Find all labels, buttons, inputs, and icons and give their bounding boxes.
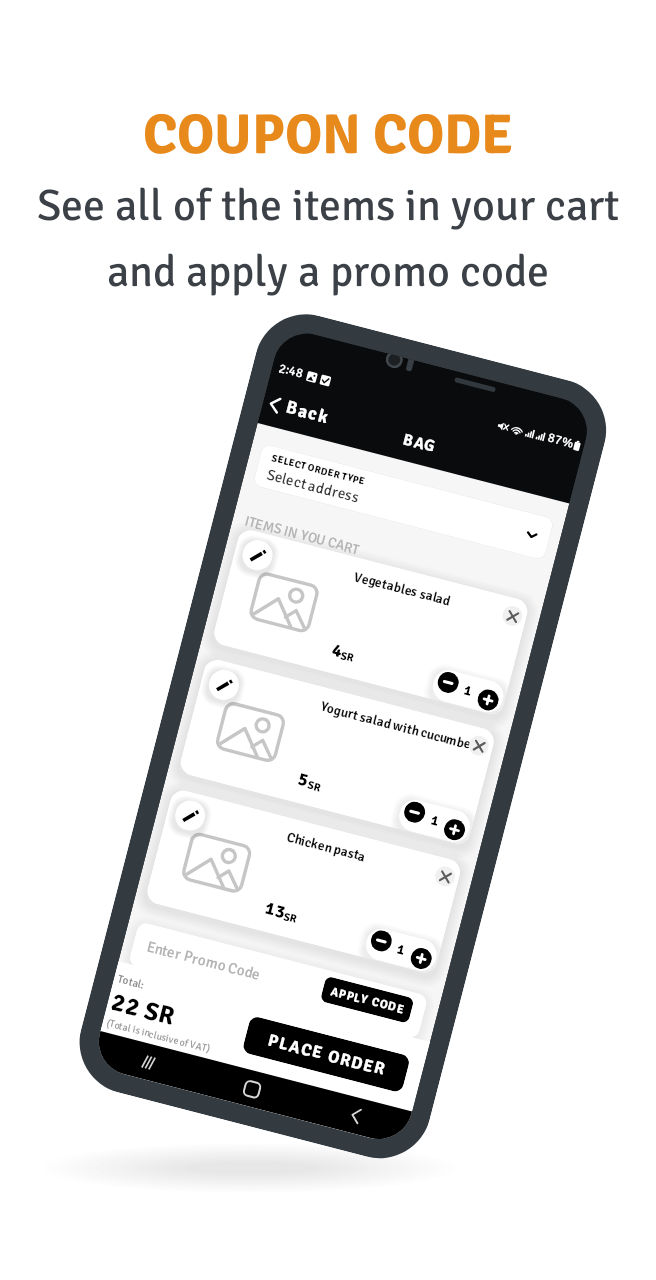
other: Back [284, 396, 331, 429]
other: Select address [265, 465, 361, 507]
other: APPLY CODE [329, 984, 406, 1017]
other: See all of the items in your cart [37, 179, 619, 234]
button[interactable]: Edit Yogurt salad with cucumber [206, 667, 242, 703]
other: SELECT ORDER TYPE [270, 452, 366, 488]
button[interactable]: Back [299, 1085, 412, 1146]
button[interactable]: Remove Chicken pasta [433, 864, 457, 889]
button[interactable]: Edit Vegetables salad [239, 537, 276, 573]
button[interactable]: Increase quantity [408, 946, 434, 971]
button[interactable]: APPLY CODE [320, 976, 414, 1024]
button[interactable]: Increase quantity [442, 817, 467, 842]
button[interactable]: Decrease quantity [435, 670, 461, 695]
other: Vegetables salad [352, 568, 452, 609]
button[interactable]: SELECT ORDER TYPE [252, 443, 555, 561]
button[interactable]: Decrease quantity [402, 799, 427, 825]
other: ITEMS IN YOU CART [242, 512, 361, 559]
button[interactable]: Back [264, 389, 334, 432]
other: (Total is inclusive of VAT) [105, 1016, 211, 1056]
button[interactable]: Edit Chicken pasta [172, 797, 208, 834]
other: 1 [395, 940, 407, 959]
other: and apply a promo code [107, 245, 549, 300]
button[interactable]: Home [196, 1058, 308, 1120]
other: COUPON CODE [143, 100, 513, 169]
other: SR [339, 648, 355, 665]
other: 4 [329, 638, 345, 663]
button[interactable]: Chicken pasta [144, 788, 463, 976]
other: Yogurt salad with cucumber [318, 698, 478, 755]
button[interactable]: Yogurt salad with cucumber [178, 657, 497, 847]
other: 22 SR [108, 986, 177, 1032]
button[interactable]: Remove Vegetables salad [500, 604, 525, 628]
other: BAG [401, 429, 437, 457]
other: 1 [428, 811, 441, 831]
other: Total: [116, 972, 146, 992]
other: SR [306, 778, 322, 795]
button[interactable]: Remove Yogurt salad with cucumber [467, 733, 491, 758]
other: Chicken pasta [285, 829, 367, 865]
other: 87% [546, 429, 575, 452]
other: 1 [462, 681, 474, 701]
button[interactable]: Decrease quantity [369, 928, 394, 954]
button[interactable]: Increase quantity [475, 687, 501, 713]
other: 2:48 [277, 360, 304, 382]
other: 5 [296, 768, 311, 793]
button[interactable]: Vegetables salad [211, 527, 530, 717]
other: Enter Promo Code [145, 937, 263, 985]
other: 13 [263, 897, 288, 924]
button[interactable]: Enter Promo Code [128, 921, 428, 1040]
other: PLACE ORDER [266, 1030, 386, 1080]
button[interactable]: Recent apps [91, 1031, 205, 1093]
other: SR [282, 909, 298, 926]
button[interactable]: PLACE ORDER [242, 1015, 411, 1093]
